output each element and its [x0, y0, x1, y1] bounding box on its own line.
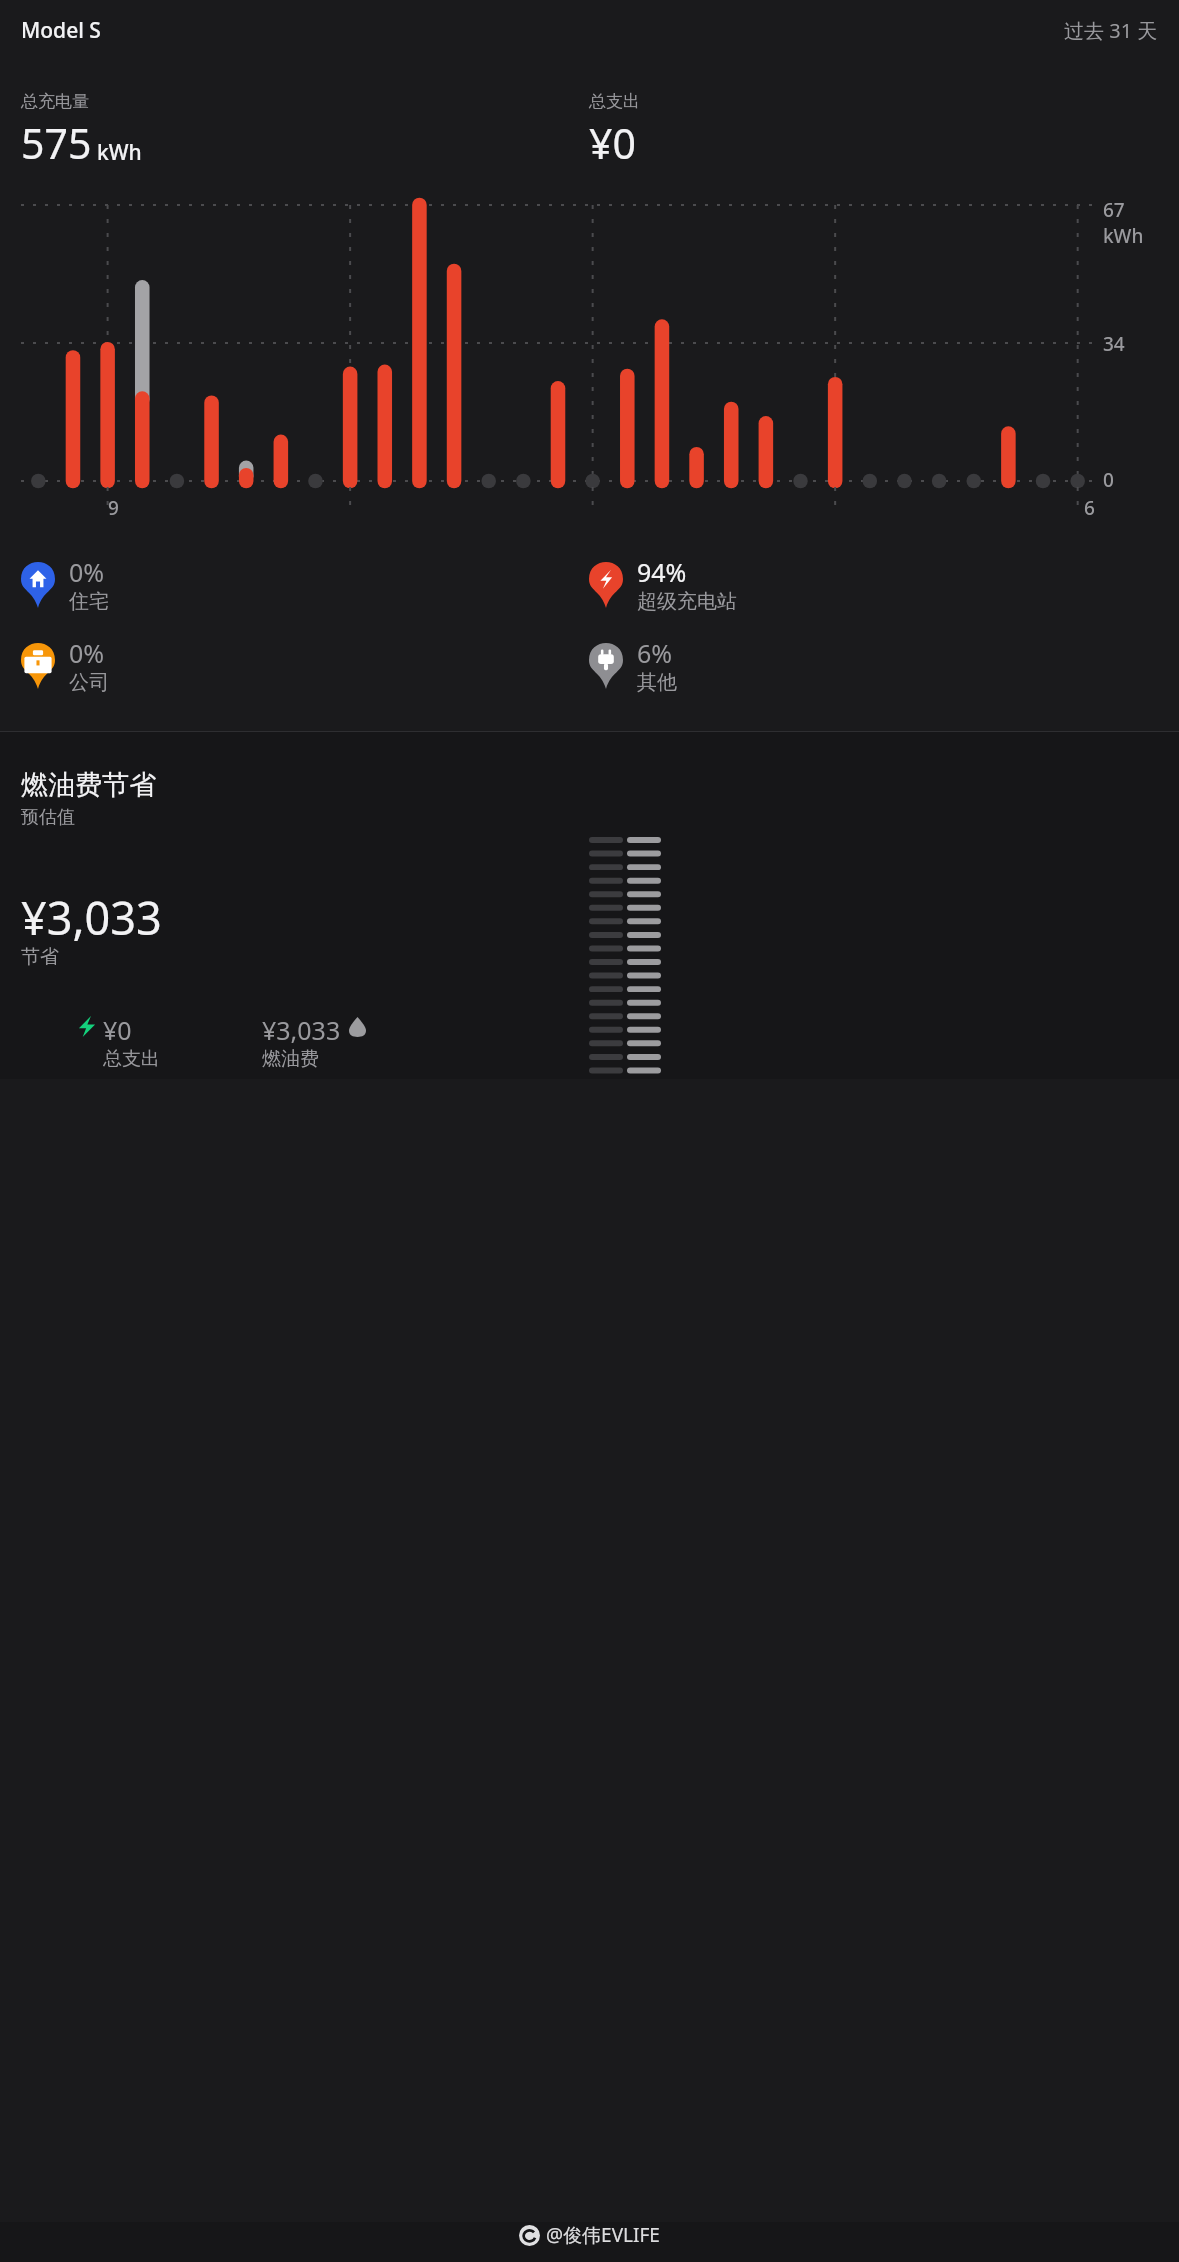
staticText: 住宅 — [69, 589, 109, 614]
staticText: 总充电量 — [21, 91, 89, 112]
staticText: 其他 — [637, 670, 677, 695]
button[interactable]: 其他 — [589, 634, 1158, 697]
staticText: 575 — [21, 115, 92, 171]
staticText: 总支出 — [103, 1047, 160, 1071]
other: Electricity — [78, 1016, 96, 1037]
other: 住宅 — [21, 562, 55, 608]
staticText: 燃油费节省 — [21, 768, 156, 802]
staticText: 0% — [69, 636, 105, 670]
staticText: 94% — [637, 555, 687, 589]
staticText: 0 — [1103, 467, 1114, 493]
staticText: Model S — [21, 16, 101, 45]
staticText: 预估值 — [21, 806, 75, 829]
staticText: 总支出 — [589, 91, 640, 112]
staticText: ¥3,033 — [21, 887, 162, 948]
staticText: ¥0 — [589, 115, 636, 171]
staticText: kWh — [1103, 223, 1144, 249]
staticText: ¥3,033 — [262, 1013, 341, 1047]
button[interactable]: 超级充电站 — [589, 553, 1158, 616]
other: 公司 — [21, 643, 55, 689]
staticText: 公司 — [69, 670, 109, 695]
staticText: 燃油费 — [262, 1047, 319, 1071]
staticText: 过去 31 天 — [1064, 17, 1158, 44]
staticText: 0% — [69, 555, 105, 589]
staticText: 超级充电站 — [637, 589, 737, 614]
other: Fuel — [349, 1017, 366, 1037]
other: 其他 — [589, 643, 623, 689]
staticText: kWh — [97, 138, 142, 167]
staticText: 34 — [1103, 331, 1125, 357]
other: 超级充电站 — [589, 562, 623, 608]
button[interactable]: 公司 — [21, 634, 589, 697]
staticText: 67 — [1103, 197, 1125, 223]
button[interactable]: 住宅 — [21, 553, 589, 616]
button[interactable]: 过去 31 天 — [1064, 17, 1158, 44]
staticText: 6% — [637, 636, 673, 670]
staticText: ¥0 — [103, 1013, 132, 1047]
staticText: 节省 — [21, 945, 59, 969]
staticText: @俊伟EVLIFE — [546, 2222, 660, 2248]
